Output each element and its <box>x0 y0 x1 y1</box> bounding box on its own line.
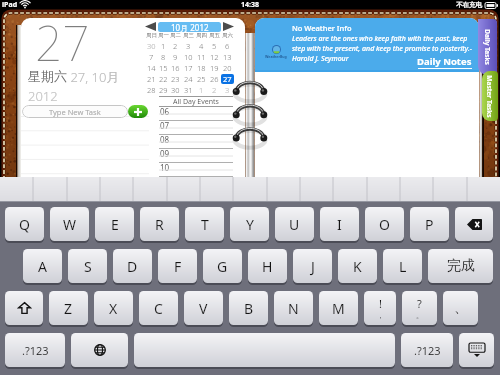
button[interactable]: Q <box>5 207 44 241</box>
button[interactable]: G <box>203 249 242 283</box>
staticText: Y <box>246 215 254 234</box>
button[interactable]: 27 <box>221 74 234 84</box>
button[interactable]: P <box>410 207 449 241</box>
button[interactable]: 07 <box>159 121 233 135</box>
button[interactable]: 19 <box>210 63 219 73</box>
button[interactable]: 16 <box>171 63 180 73</box>
button[interactable]: Type New Task <box>22 105 128 118</box>
button[interactable]: R <box>140 207 179 241</box>
button[interactable]: L <box>383 249 422 283</box>
button[interactable]: Next month <box>222 21 235 32</box>
button[interactable]: 8 <box>161 52 166 62</box>
button[interactable]: 09 <box>159 149 233 163</box>
button[interactable]: 、 <box>443 291 478 325</box>
staticText: 星期六 <box>28 68 67 84</box>
button[interactable]: M <box>319 291 358 325</box>
button[interactable]: V <box>184 291 223 325</box>
button[interactable]: 31 <box>184 85 193 95</box>
staticText: F <box>174 257 182 276</box>
button[interactable]: Shift <box>5 291 43 325</box>
button[interactable]: J <box>293 249 332 283</box>
button[interactable]: 15 <box>159 63 168 73</box>
button[interactable]: 3 <box>186 41 191 51</box>
staticText: Type New Task <box>49 107 101 117</box>
button[interactable]: 30 <box>147 41 156 51</box>
button[interactable]: 10 <box>159 163 233 177</box>
button[interactable]: Add task <box>128 105 148 118</box>
button[interactable]: 21 <box>147 74 156 84</box>
button[interactable]: Y <box>230 207 269 241</box>
other: Switch language <box>94 344 106 356</box>
staticText: Daily Notes <box>417 55 472 68</box>
button[interactable]: 22 <box>159 74 168 84</box>
button[interactable]: 1 <box>199 85 204 95</box>
button[interactable]: 13 <box>223 52 232 62</box>
staticText: 。 <box>416 311 423 320</box>
button[interactable]: 2 <box>212 85 217 95</box>
button[interactable]: Z <box>49 291 88 325</box>
staticText: 09 <box>160 148 170 159</box>
button[interactable]: O <box>365 207 404 241</box>
button[interactable]: 5 <box>212 41 217 51</box>
button[interactable]: .?123 <box>401 333 453 367</box>
button[interactable]: 18 <box>197 63 206 73</box>
button[interactable]: N <box>274 291 313 325</box>
staticText: 周六 <box>222 32 233 39</box>
button[interactable]: 1 <box>161 41 166 51</box>
button[interactable]: X <box>94 291 133 325</box>
button[interactable]: 10 <box>184 52 193 62</box>
button[interactable]: 08 <box>159 135 233 149</box>
button[interactable]: T <box>185 207 224 241</box>
button[interactable]: 25 <box>197 74 206 84</box>
button[interactable]: I <box>320 207 359 241</box>
button[interactable] <box>134 333 395 367</box>
button[interactable]: 30 <box>171 85 180 95</box>
button[interactable]: 9 <box>173 52 178 62</box>
button[interactable]: Backspace <box>455 207 493 241</box>
button[interactable]: 4 <box>199 41 204 51</box>
button[interactable]: .?123 <box>5 333 65 367</box>
button[interactable]: W <box>50 207 89 241</box>
button[interactable]: Previous month <box>144 21 157 32</box>
button[interactable]: S <box>68 249 107 283</box>
button[interactable]: 6 <box>225 41 230 51</box>
button[interactable]: Master Tasks <box>482 71 498 121</box>
button[interactable]: 28 <box>147 85 156 95</box>
button[interactable]: ? <box>402 291 437 325</box>
button[interactable]: ! <box>364 291 396 325</box>
button[interactable]: 11 <box>197 52 206 62</box>
button[interactable]: A <box>23 249 62 283</box>
button[interactable]: E <box>95 207 134 241</box>
button[interactable]: 3 <box>225 85 230 95</box>
button[interactable]: Hide keyboard <box>459 333 494 367</box>
staticText: B <box>244 299 254 318</box>
button[interactable]: 26 <box>210 74 219 84</box>
staticText: M <box>332 299 345 318</box>
button[interactable]: 完成 <box>428 249 493 283</box>
button[interactable]: 23 <box>171 74 180 84</box>
button[interactable]: 14 <box>147 63 156 73</box>
button[interactable]: 20 <box>223 63 232 73</box>
button[interactable]: No Weather Info <box>255 18 479 70</box>
button[interactable]: K <box>338 249 377 283</box>
staticText: 、 <box>454 299 468 317</box>
other: Hide keyboard <box>469 343 485 357</box>
button[interactable]: C <box>139 291 178 325</box>
button[interactable]: 7 <box>149 52 154 62</box>
button[interactable]: B <box>229 291 268 325</box>
button[interactable]: 10月 2012 <box>158 22 221 32</box>
button[interactable]: 06 <box>159 107 233 121</box>
button[interactable]: 17 <box>184 63 193 73</box>
button[interactable]: D <box>113 249 152 283</box>
button[interactable]: 24 <box>184 74 193 84</box>
button[interactable]: F <box>158 249 197 283</box>
staticText: S <box>84 257 92 276</box>
staticText: 06 <box>160 106 170 117</box>
button[interactable]: Switch language <box>71 333 128 367</box>
button[interactable]: 2 <box>173 41 178 51</box>
button[interactable]: U <box>275 207 314 241</box>
button[interactable]: Daily Tasks <box>478 19 497 75</box>
button[interactable]: H <box>248 249 287 283</box>
button[interactable]: 29 <box>159 85 168 95</box>
button[interactable]: 12 <box>210 52 219 62</box>
